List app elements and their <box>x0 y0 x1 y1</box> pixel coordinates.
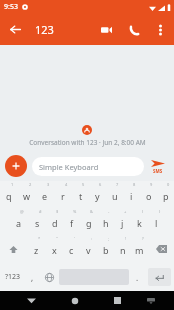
staticText: ? <box>142 236 144 241</box>
staticText: t <box>79 190 83 202</box>
staticText: ) <box>159 209 161 214</box>
button[interactable]: Shift <box>0 235 27 263</box>
button[interactable]: : <box>80 235 97 263</box>
button[interactable]: ; <box>97 235 114 263</box>
staticText: & <box>90 209 93 214</box>
staticText: s <box>35 217 40 229</box>
button[interactable]: ! <box>114 235 131 263</box>
button[interactable]: ? <box>131 235 148 263</box>
button[interactable]: 7 <box>106 181 123 208</box>
staticText: " <box>56 236 58 241</box>
button[interactable]: 2 <box>18 181 36 208</box>
button[interactable]: Add attachment <box>5 155 27 177</box>
staticText: Simple Keyboard <box>39 162 99 172</box>
button[interactable]: 4 <box>54 181 72 208</box>
staticText: 123 <box>35 22 92 37</box>
staticText: x <box>52 244 57 256</box>
staticText: d <box>52 217 58 229</box>
button[interactable]: Simple Keyboard <box>32 157 144 176</box>
staticText: 9 <box>150 182 153 187</box>
button[interactable]: $ <box>46 208 63 235</box>
button[interactable]: , <box>25 263 40 291</box>
staticText: ; <box>108 236 110 241</box>
button[interactable]: 6 <box>89 181 106 208</box>
staticText: 5 <box>82 182 85 187</box>
button[interactable]: @ <box>10 208 28 235</box>
staticText: ! <box>125 236 127 241</box>
button[interactable]: ' <box>63 235 80 263</box>
staticText: q <box>6 190 12 202</box>
button[interactable]: * <box>27 235 45 263</box>
staticText: ?123 <box>5 272 21 282</box>
staticText: - <box>108 209 110 214</box>
button[interactable]: More options <box>148 18 172 42</box>
staticText: u <box>112 190 118 202</box>
button[interactable]: Back <box>15 291 48 310</box>
staticText: h <box>103 217 109 229</box>
staticText: o <box>146 190 152 202</box>
button[interactable]: & <box>80 208 97 235</box>
button[interactable]: Change language <box>40 263 58 291</box>
button[interactable]: ) <box>148 208 165 235</box>
staticText: w <box>23 190 31 202</box>
staticText: l <box>155 217 158 229</box>
staticText: SMS <box>153 168 163 174</box>
staticText: c <box>69 244 74 256</box>
staticText: 2 <box>29 182 32 187</box>
staticText: 7 <box>116 182 119 187</box>
staticText: g <box>86 217 92 229</box>
button[interactable]: Recent apps <box>101 291 134 310</box>
button[interactable]: Backspace <box>148 235 174 263</box>
button[interactable]: 5 <box>72 181 89 208</box>
staticText: . <box>136 272 139 283</box>
staticText: b <box>103 244 109 256</box>
staticText: 8 <box>133 182 136 187</box>
button[interactable]: Hide keyboard <box>134 291 167 310</box>
button[interactable]: . <box>130 263 145 291</box>
button[interactable]: + <box>114 208 131 235</box>
button[interactable]: Enter <box>148 268 171 286</box>
button[interactable]: 8 <box>123 181 140 208</box>
button[interactable]: ( <box>131 208 148 235</box>
staticText: 4 <box>65 182 68 187</box>
button[interactable]: % <box>63 208 80 235</box>
staticText: n <box>120 244 126 256</box>
staticText: i <box>130 190 133 202</box>
button[interactable]: 0 <box>157 181 174 208</box>
staticText: # <box>39 209 42 214</box>
button[interactable]: Back <box>0 14 31 45</box>
staticText: r <box>61 190 65 202</box>
staticText: 1 <box>11 182 14 187</box>
button[interactable]: # <box>28 208 46 235</box>
button[interactable]: 1 <box>0 181 18 208</box>
button[interactable]: - <box>97 208 114 235</box>
button[interactable]: Send SMS <box>147 159 169 174</box>
button[interactable]: 3 <box>36 181 54 208</box>
button[interactable]: 9 <box>140 181 157 208</box>
button[interactable]: Video call <box>92 16 120 44</box>
staticText: m <box>135 244 144 256</box>
staticText: ' <box>74 236 75 241</box>
staticText: * <box>38 236 41 241</box>
staticText: % <box>73 209 77 214</box>
staticText: 9:53 <box>4 2 18 12</box>
staticText: ( <box>142 209 144 214</box>
staticText: e <box>42 190 48 202</box>
staticText: f <box>70 217 74 229</box>
staticText: $ <box>56 209 59 214</box>
staticText: p <box>163 190 169 202</box>
staticText: j <box>121 217 124 229</box>
staticText: , <box>31 272 34 283</box>
staticText: y <box>95 190 100 202</box>
button[interactable]: " <box>45 235 63 263</box>
staticText: 6 <box>99 182 102 187</box>
staticText: @ <box>20 209 24 214</box>
button[interactable]: Call <box>120 16 148 44</box>
staticText: 0 <box>167 182 170 187</box>
staticText: + <box>124 209 127 214</box>
staticText: Conversation with 123 · Jun 2, 8:00 AM <box>29 138 146 147</box>
button[interactable]: ?123 <box>0 263 25 291</box>
button[interactable]: Home <box>58 291 91 310</box>
staticText: : <box>91 236 93 241</box>
